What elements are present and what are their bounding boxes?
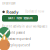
button[interactable]: START NEW SESSION: [2, 15, 38, 22]
staticText: Updated now: [25, 10, 44, 13]
staticText: Review requested: [7, 37, 31, 41]
staticText: Build passed: [7, 31, 25, 34]
staticText: OVERVIEW: [2, 2, 16, 5]
staticText: Deploy queued: [7, 43, 30, 47]
staticText: Ready: [6, 9, 18, 14]
staticText: Recent activity in your workspaces: [2, 25, 47, 28]
staticText: START NEW SESSION: [7, 16, 32, 20]
